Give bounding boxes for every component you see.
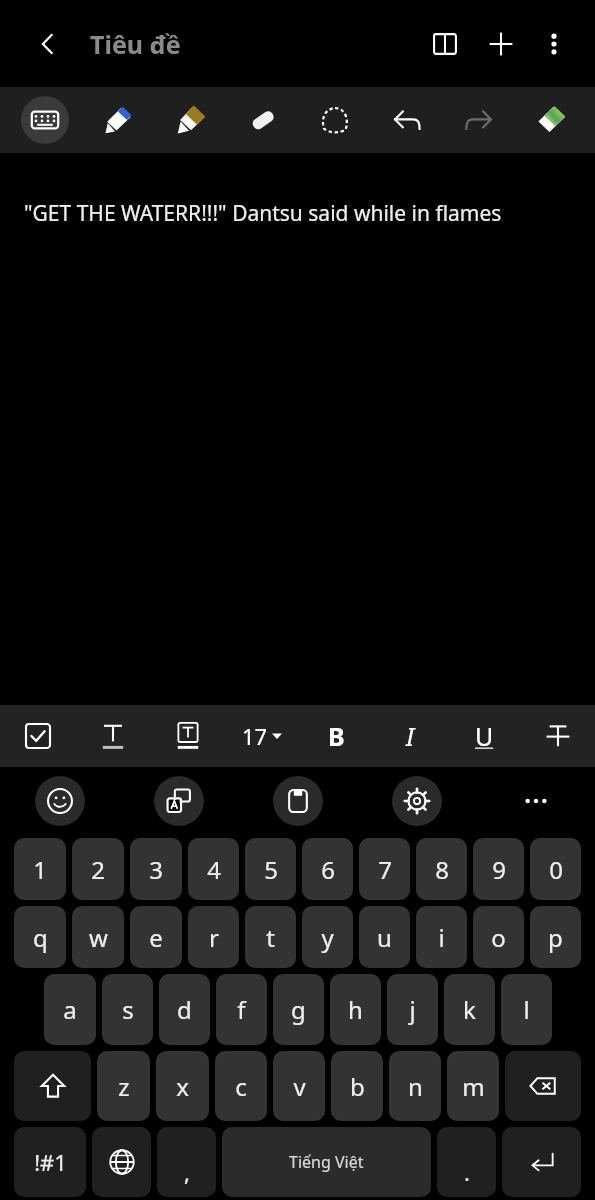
- button[interactable]: 1: [14, 838, 66, 900]
- staticText: l: [523, 993, 530, 1026]
- button[interactable]: 4: [188, 838, 239, 900]
- button[interactable]: U: [447, 705, 521, 767]
- button[interactable]: .: [437, 1127, 496, 1197]
- staticText: u: [377, 921, 392, 954]
- button[interactable]: g: [273, 974, 324, 1045]
- button[interactable]: 6: [302, 838, 353, 900]
- button[interactable]: k: [444, 974, 495, 1045]
- button[interactable]: q: [14, 906, 66, 968]
- staticText: k: [463, 993, 476, 1026]
- button[interactable]: More options: [529, 19, 579, 69]
- staticText: q: [33, 921, 48, 954]
- button[interactable]: s: [102, 974, 153, 1045]
- button[interactable]: Redo: [443, 87, 515, 153]
- button[interactable]: j: [387, 974, 438, 1045]
- button[interactable]: I: [373, 705, 447, 767]
- staticText: a: [63, 993, 77, 1026]
- staticText: v: [293, 1070, 306, 1103]
- button[interactable]: Checklist: [0, 705, 75, 767]
- staticText: 8: [435, 853, 449, 886]
- button[interactable]: m: [447, 1051, 499, 1121]
- staticText: B: [328, 719, 345, 753]
- button[interactable]: Add: [473, 16, 529, 72]
- button[interactable]: z: [97, 1051, 150, 1121]
- staticText: 1: [33, 853, 47, 886]
- staticText: t: [266, 921, 275, 954]
- staticText: p: [548, 921, 563, 954]
- staticText: I: [406, 719, 415, 753]
- button[interactable]: Text colour: [75, 705, 150, 767]
- staticText: 0: [549, 853, 563, 886]
- button[interactable]: Strikethrough: [521, 705, 595, 767]
- button[interactable]: Keyboard: [8, 87, 81, 153]
- button[interactable]: ,: [157, 1127, 216, 1197]
- staticText: 9: [492, 853, 506, 886]
- staticText: c: [235, 1070, 247, 1103]
- staticText: y: [321, 921, 334, 954]
- button[interactable]: o: [473, 906, 524, 968]
- staticText: s: [122, 993, 134, 1026]
- button[interactable]: Emoji: [0, 767, 119, 835]
- button[interactable]: Backspace: [505, 1051, 581, 1121]
- button[interactable]: c: [215, 1051, 267, 1121]
- button[interactable]: a: [44, 974, 96, 1045]
- button[interactable]: Pen: [81, 87, 154, 153]
- button[interactable]: e: [130, 906, 182, 968]
- button[interactable]: Change language: [92, 1127, 151, 1197]
- button[interactable]: w: [72, 906, 124, 968]
- button[interactable]: u: [359, 906, 410, 968]
- button[interactable]: Translate: [119, 767, 238, 835]
- staticText: g: [291, 993, 306, 1026]
- button[interactable]: x: [156, 1051, 209, 1121]
- button[interactable]: 0: [530, 838, 581, 900]
- button[interactable]: l: [501, 974, 552, 1045]
- button[interactable]: b: [331, 1051, 383, 1121]
- button[interactable]: Settings: [357, 767, 476, 835]
- button[interactable]: f: [216, 974, 267, 1045]
- staticText: x: [176, 1070, 189, 1103]
- button[interactable]: 17: [225, 705, 299, 767]
- button[interactable]: d: [159, 974, 210, 1045]
- button[interactable]: r: [188, 906, 239, 968]
- button[interactable]: 7: [359, 838, 410, 900]
- button[interactable]: Save: [238, 767, 357, 835]
- button[interactable]: i: [416, 906, 467, 968]
- button[interactable]: 2: [72, 838, 124, 900]
- button[interactable]: Reading mode: [417, 16, 473, 72]
- button[interactable]: 3: [130, 838, 182, 900]
- button[interactable]: 8: [416, 838, 467, 900]
- button[interactable]: 5: [245, 838, 296, 900]
- staticText: 3: [149, 853, 163, 886]
- button[interactable]: Eraser: [227, 87, 299, 153]
- staticText: 4: [207, 853, 221, 886]
- button[interactable]: Selection: [299, 87, 371, 153]
- staticText: U: [475, 719, 494, 753]
- staticText: 2: [91, 853, 105, 886]
- staticText: Tiêu đề: [90, 27, 181, 61]
- button[interactable]: Text highlight: [150, 705, 225, 767]
- button[interactable]: More: [476, 767, 595, 835]
- button[interactable]: v: [273, 1051, 325, 1121]
- button[interactable]: "GET THE WATERR!!!" Dantsu said while in…: [0, 153, 595, 705]
- button[interactable]: !#1: [14, 1127, 86, 1197]
- button[interactable]: n: [389, 1051, 441, 1121]
- button[interactable]: y: [302, 906, 353, 968]
- button[interactable]: Tiếng Việt: [222, 1127, 431, 1197]
- button[interactable]: Shift: [14, 1051, 91, 1121]
- button[interactable]: Back: [24, 20, 72, 68]
- button[interactable]: Highlighter: [154, 87, 227, 153]
- staticText: n: [408, 1070, 423, 1103]
- staticText: i: [438, 921, 445, 954]
- staticText: e: [149, 921, 163, 954]
- staticText: z: [118, 1070, 130, 1103]
- button[interactable]: h: [330, 974, 381, 1045]
- button[interactable]: Enter: [502, 1127, 581, 1197]
- button[interactable]: Undo: [371, 87, 443, 153]
- button[interactable]: 9: [473, 838, 524, 900]
- button[interactable]: t: [245, 906, 296, 968]
- staticText: r: [209, 921, 219, 954]
- button[interactable]: Colour pen: [515, 87, 587, 153]
- button[interactable]: p: [530, 906, 581, 968]
- staticText: w: [89, 921, 108, 954]
- button[interactable]: B: [299, 705, 373, 767]
